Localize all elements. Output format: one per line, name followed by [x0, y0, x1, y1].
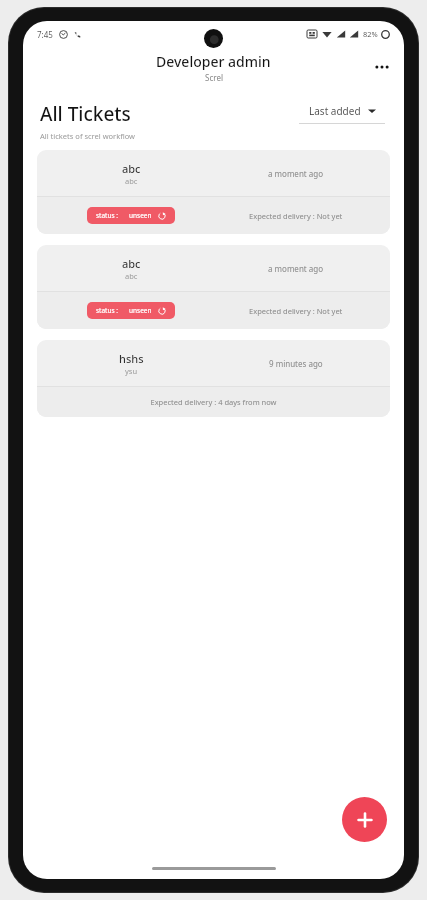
staticText: a moment ago [268, 263, 324, 274]
staticText: 9 minutes ago [269, 358, 323, 369]
staticText: abc [122, 256, 141, 271]
button[interactable]: Last added [296, 104, 388, 124]
button[interactable]: Add ticket [342, 797, 387, 842]
staticText: abc [122, 161, 141, 176]
staticText: All tickets of screl workflow [40, 131, 135, 141]
button[interactable]: hshs [37, 340, 390, 417]
staticText: status : [96, 306, 119, 315]
staticText: abc [125, 176, 138, 186]
staticText: a moment ago [268, 168, 324, 179]
staticText: Expected delivery : Not yet [249, 306, 343, 316]
staticText: hshs [119, 351, 144, 366]
staticText: Developer admin [156, 52, 271, 71]
button[interactable]: More options [366, 51, 398, 83]
staticText: Expected delivery : Not yet [249, 211, 343, 221]
staticText: Last added [309, 104, 361, 118]
staticText: unseen [129, 211, 152, 220]
staticText: status : [96, 211, 119, 220]
staticText: Screl [205, 72, 223, 83]
button[interactable]: abc [37, 150, 390, 234]
staticText: Expected delivery : 4 days from now [150, 397, 277, 407]
staticText: All Tickets [40, 101, 131, 127]
staticText: 7:45 [37, 29, 53, 40]
button[interactable]: status : [87, 207, 175, 224]
button[interactable]: status : [87, 302, 175, 319]
staticText: abc [125, 271, 138, 281]
button[interactable]: abc [37, 245, 390, 329]
staticText: ysu [125, 366, 138, 376]
staticText: 82% [363, 29, 378, 39]
staticText: unseen [129, 306, 152, 315]
